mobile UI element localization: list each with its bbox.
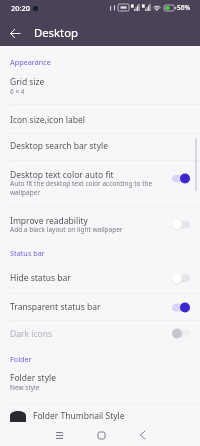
button[interactable]: Back	[130, 426, 154, 444]
staticText: 56%	[177, 3, 191, 12]
button[interactable]: Dark icons	[0, 321, 200, 346]
staticText: Grid size	[10, 76, 45, 88]
staticText: Folder Thumbnail Style	[33, 410, 125, 422]
staticText: New style	[10, 383, 40, 392]
staticText: Auto fit the desktop text color accordin…	[10, 179, 161, 197]
button[interactable]: Back	[0, 20, 29, 46]
button[interactable]: Folder style	[0, 368, 200, 403]
staticText: Transparent status bar	[10, 301, 101, 313]
staticText: 6 × 4	[10, 87, 25, 96]
staticText: Desktop search bar style	[10, 140, 108, 152]
staticText: Desktop text color auto fit	[10, 169, 114, 181]
button[interactable]: Desktop text color auto fit	[0, 161, 200, 206]
staticText: Folder	[10, 354, 32, 364]
button[interactable]: Improve readability	[0, 207, 200, 241]
button[interactable]: Grid size	[0, 71, 200, 104]
button[interactable]: Hide status bar	[0, 263, 200, 293]
button[interactable]: Folder Thumbnail Style	[0, 404, 200, 428]
staticText: Dark icons	[10, 328, 52, 340]
staticText: 20:20	[11, 3, 30, 13]
staticText: Status bar	[10, 248, 45, 258]
button[interactable]: Icon size,icon label	[0, 105, 200, 133]
staticText: Icon size,icon label	[10, 114, 85, 126]
staticText: Improve readability	[10, 215, 88, 227]
staticText: Add a black layout on light wallpaper	[10, 225, 161, 234]
button[interactable]: Home	[89, 426, 113, 444]
staticText: Hide status bar	[10, 272, 71, 284]
button[interactable]: Recent apps	[47, 426, 71, 444]
staticText: Folder style	[10, 372, 56, 384]
button[interactable]: Transparent status bar	[0, 294, 200, 320]
staticText: Desktop	[34, 25, 78, 40]
staticText: Appearance	[10, 57, 51, 67]
button[interactable]: Desktop search bar style	[0, 134, 200, 160]
